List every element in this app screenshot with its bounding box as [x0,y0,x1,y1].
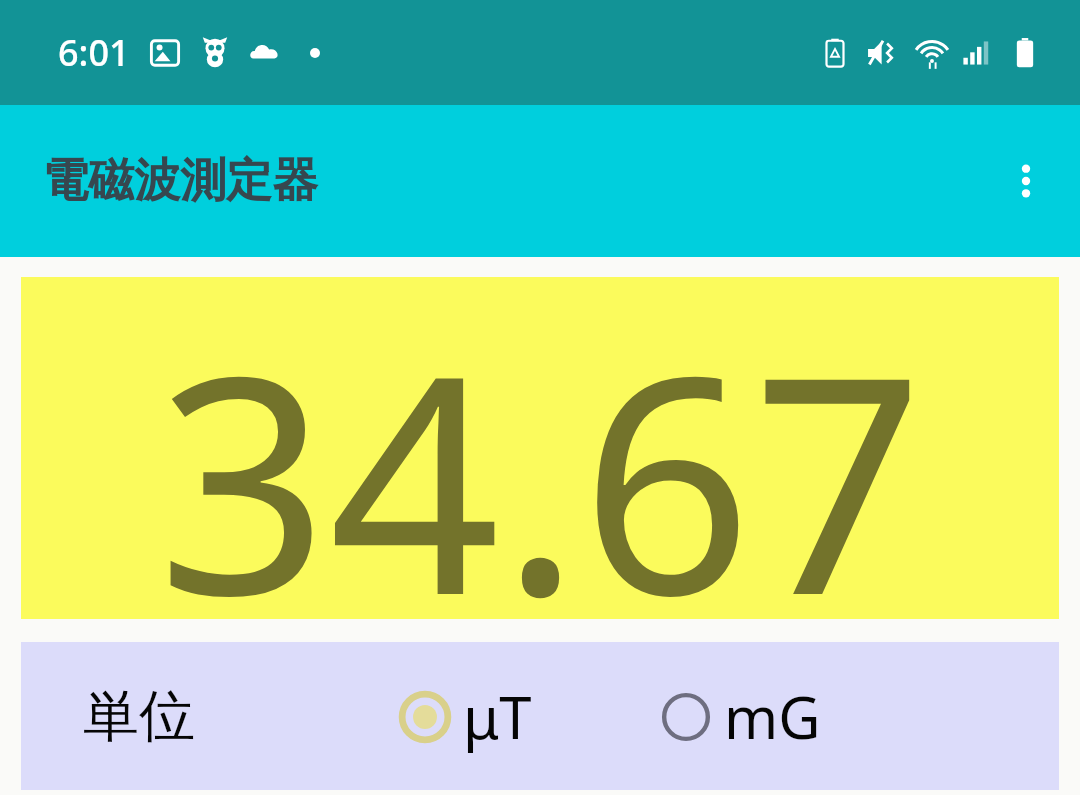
staticText: 単位 [83,681,195,752]
button[interactable]: 34.67 [21,277,1059,619]
staticText: 34.67 [157,273,924,615]
button[interactable]: mG [656,669,825,764]
staticText: 電磁波測定器 [42,152,318,210]
button[interactable]: μT [395,669,536,764]
button[interactable]: More options [986,141,1066,221]
staticText: μT [463,677,532,756]
staticText: 6:01 [58,28,130,77]
staticText: mG [724,677,821,756]
